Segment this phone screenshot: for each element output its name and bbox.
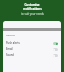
button[interactable]: Push alerts — [3, 40, 61, 46]
staticText: to suit your needs — [21, 12, 44, 16]
button[interactable]: Sound — [3, 52, 61, 58]
staticText: Push alerts — [6, 41, 20, 45]
staticText: Customise — [24, 3, 40, 7]
staticText: General — [6, 33, 15, 36]
button[interactable]: Email — [3, 46, 61, 52]
staticText: Sound — [6, 53, 14, 57]
staticText: Email — [6, 47, 13, 51]
staticText: notifications — [23, 7, 42, 11]
